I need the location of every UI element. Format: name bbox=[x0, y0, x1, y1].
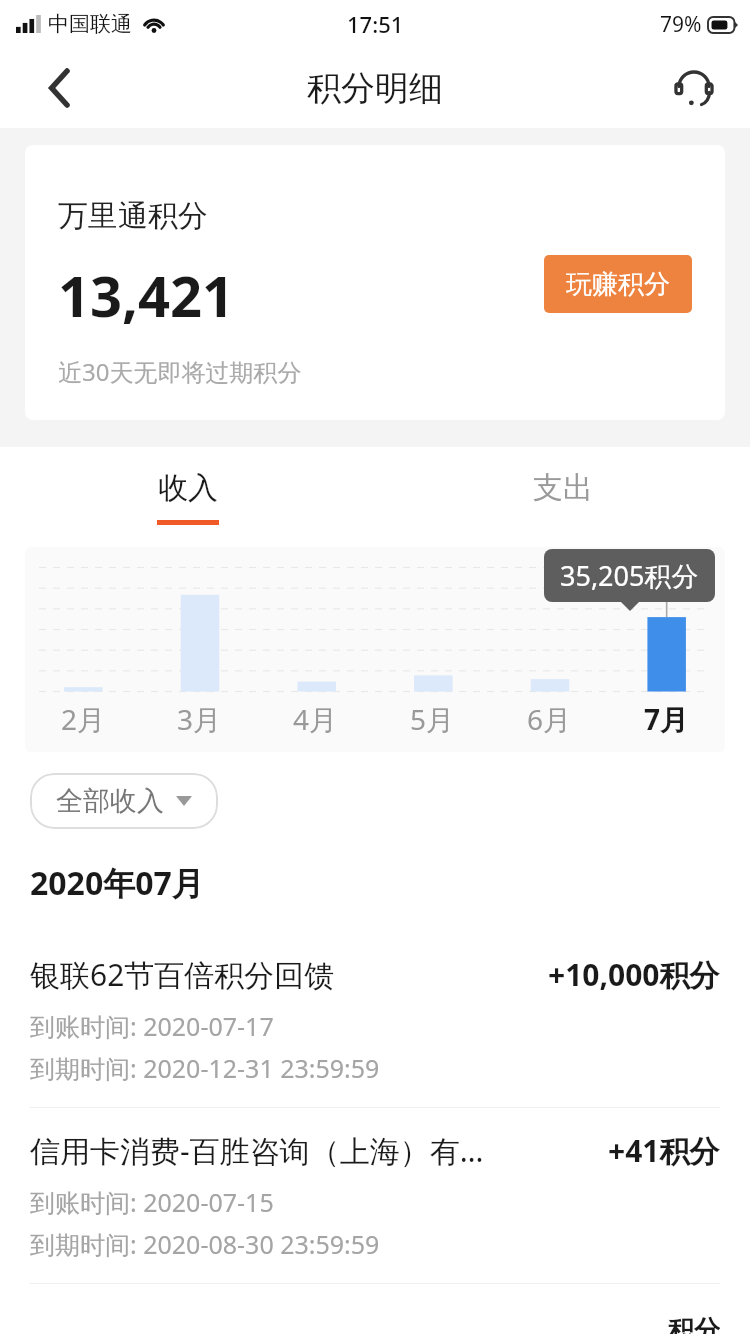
staticText: 近30天无即将过期积分 bbox=[58, 355, 302, 388]
staticText: 6月 bbox=[527, 700, 572, 738]
staticText: 2020年07月 bbox=[30, 861, 204, 905]
button[interactable]: 信用卡消费-百胜咨询（上海）有… bbox=[0, 1108, 750, 1283]
staticText: 13,421 bbox=[58, 257, 235, 333]
staticText: 到账时间: 2020-07-17 bbox=[30, 1009, 274, 1043]
staticText: 5月 bbox=[410, 700, 455, 738]
staticText: 银联62节百倍积分回馈 bbox=[30, 954, 532, 995]
staticText: 3月 bbox=[177, 700, 222, 738]
staticText: 到账时间: 2020-07-15 bbox=[30, 1185, 274, 1219]
staticText: 积分明细 bbox=[307, 67, 443, 110]
staticText: 收入 bbox=[158, 469, 218, 507]
staticText: 到期时间: 2020-08-30 23:59:59 bbox=[30, 1227, 380, 1261]
staticText: 玩赚积分 bbox=[566, 268, 670, 301]
button[interactable]: 返回 bbox=[34, 62, 86, 114]
button[interactable]: 玩赚积分 bbox=[544, 255, 692, 313]
staticText: 万里通积分 bbox=[58, 197, 208, 235]
staticText: 支出 bbox=[533, 469, 593, 507]
staticText: 中国联通 bbox=[48, 11, 132, 37]
staticText: 积分 bbox=[668, 1314, 720, 1334]
button[interactable]: 支出 bbox=[375, 447, 750, 547]
staticText: 全部收入 bbox=[56, 784, 164, 818]
staticText: 7月 bbox=[644, 700, 689, 738]
button[interactable]: 客服 bbox=[666, 60, 722, 116]
staticText: 信用卡消费-百胜咨询（上海）有… bbox=[30, 1130, 592, 1171]
staticText: 79% bbox=[660, 10, 702, 39]
staticText: 2月 bbox=[61, 700, 106, 738]
staticText: 到期时间: 2020-12-31 23:59:59 bbox=[30, 1051, 380, 1085]
staticText: 4月 bbox=[293, 700, 338, 738]
staticText: 17:51 bbox=[347, 9, 404, 39]
staticText: 35,205积分 bbox=[560, 557, 699, 594]
button[interactable]: 全部收入 bbox=[30, 773, 218, 829]
button[interactable]: 收入 bbox=[0, 447, 375, 547]
button[interactable]: 银联62节百倍积分回馈 bbox=[0, 932, 750, 1107]
staticText: +41积分 bbox=[608, 1130, 720, 1171]
staticText: +10,000积分 bbox=[548, 954, 720, 995]
